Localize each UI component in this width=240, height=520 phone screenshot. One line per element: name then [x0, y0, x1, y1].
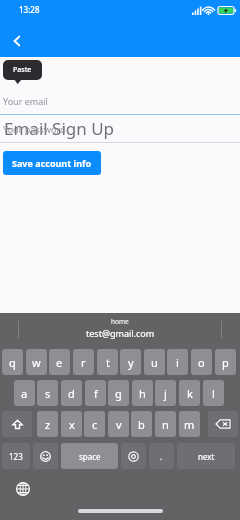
button[interactable]: a: [14, 380, 35, 406]
staticText: s: [45, 386, 51, 401]
button[interactable]: f: [85, 380, 106, 406]
button[interactable]: Change language: [13, 479, 33, 499]
staticText: n: [162, 417, 169, 432]
staticText: v: [116, 417, 122, 432]
button[interactable]: z: [37, 411, 58, 437]
button[interactable]: Paste: [3, 60, 42, 80]
button[interactable]: q: [2, 349, 23, 375]
button[interactable]: m: [179, 411, 200, 437]
staticText: q: [9, 355, 16, 370]
button[interactable]: Emoji: [33, 443, 58, 469]
button[interactable]: Your password: [0, 117, 240, 143]
button[interactable]: j: [155, 380, 176, 406]
button[interactable]: r: [73, 349, 94, 375]
button[interactable]: x: [61, 411, 82, 437]
staticText: k: [187, 386, 193, 401]
staticText: b: [138, 417, 145, 432]
button[interactable]: b: [131, 411, 152, 437]
staticText: m: [184, 417, 195, 432]
button[interactable]: space: [61, 443, 118, 469]
button[interactable]: u: [144, 349, 165, 375]
staticText: d: [68, 386, 75, 401]
button[interactable]: n: [155, 411, 176, 437]
staticText: .: [160, 451, 163, 462]
button[interactable]: Shift: [2, 411, 32, 437]
staticText: f: [94, 386, 98, 401]
staticText: c: [92, 417, 98, 432]
button[interactable]: e: [49, 349, 70, 375]
button[interactable]: s: [37, 380, 58, 406]
staticText: next: [198, 451, 215, 462]
button[interactable]: g: [108, 380, 129, 406]
staticText: p: [222, 355, 229, 370]
staticText: Save account info: [12, 157, 92, 169]
staticText: Email Sign Up: [4, 117, 115, 140]
staticText: i: [176, 355, 179, 370]
staticText: u: [151, 355, 158, 370]
staticText: j: [164, 386, 167, 401]
button[interactable]: c: [84, 411, 105, 437]
staticText: Your email: [3, 95, 48, 107]
staticText: h: [139, 386, 146, 401]
button[interactable]: t: [97, 349, 118, 375]
staticText: o: [198, 355, 205, 370]
button[interactable]: 123: [2, 443, 30, 469]
button[interactable]: w: [26, 349, 47, 375]
button[interactable]: h: [132, 380, 153, 406]
button[interactable]: d: [61, 380, 82, 406]
staticText: w: [32, 355, 41, 370]
button[interactable]: l: [203, 380, 224, 406]
button[interactable]: p: [215, 349, 236, 375]
staticText: y: [128, 355, 134, 370]
staticText: x: [69, 417, 75, 432]
staticText: z: [45, 417, 51, 432]
staticText: e: [56, 355, 63, 370]
button[interactable]: Backspace: [208, 411, 238, 437]
staticText: t: [106, 355, 110, 370]
staticText: Paste: [13, 65, 32, 75]
staticText: Your password: [3, 123, 66, 135]
button[interactable]: o: [191, 349, 212, 375]
button[interactable]: k: [179, 380, 200, 406]
staticText: l: [212, 386, 215, 401]
button[interactable]: y: [120, 349, 141, 375]
button[interactable]: Save account info: [3, 151, 101, 175]
staticText: 13:28: [19, 4, 40, 15]
staticText: 123: [9, 451, 23, 462]
staticText: a: [21, 386, 28, 401]
staticText: space: [79, 451, 101, 462]
button[interactable]: i: [167, 349, 188, 375]
staticText: home: [111, 317, 129, 326]
staticText: g: [115, 386, 122, 401]
button[interactable]: Back: [4, 28, 30, 54]
button[interactable]: home: [0, 313, 240, 338]
staticText: test@gmail.com: [86, 327, 155, 339]
button[interactable]: Your email: [0, 89, 240, 115]
button[interactable]: .: [149, 443, 174, 469]
staticText: r: [81, 355, 86, 370]
button[interactable]: next: [177, 443, 235, 469]
button[interactable]: v: [108, 411, 129, 437]
button[interactable]: At sign: [121, 443, 146, 469]
